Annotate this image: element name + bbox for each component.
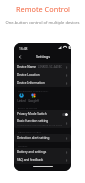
staticText: Settings bbox=[36, 54, 50, 59]
staticText: Basic function setting bbox=[17, 119, 49, 123]
staticText: Detection alert setting bbox=[17, 136, 50, 140]
button[interactable]: Linked bbox=[15, 93, 27, 103]
staticText: Privacy Mode Switch bbox=[17, 112, 47, 116]
staticText: Device Information bbox=[17, 81, 45, 85]
staticText: BASIC SETTINGS bbox=[18, 106, 38, 109]
staticText: Remote Control bbox=[16, 4, 70, 14]
staticText: 16:48 bbox=[19, 46, 28, 50]
staticText: Device Name bbox=[17, 65, 37, 69]
button[interactable]: Privacy Mode Switch bbox=[14, 110, 71, 118]
staticText: One-button control of multiple devices bbox=[5, 20, 80, 26]
staticText: OTHERS bbox=[18, 144, 28, 147]
staticText: Linked bbox=[17, 99, 26, 103]
button[interactable]: GoogleH bbox=[27, 93, 39, 103]
staticText: GoogleH bbox=[28, 99, 39, 103]
button[interactable]: Detection alert setting bbox=[14, 134, 71, 142]
staticText: Automatically sets the device to the mod… bbox=[17, 124, 62, 127]
button[interactable]: FAQ and feedback bbox=[14, 156, 71, 164]
staticText: Device Location bbox=[17, 73, 40, 77]
button[interactable]: Device Name bbox=[14, 63, 71, 71]
button[interactable]: Device Information bbox=[14, 79, 71, 87]
staticText: DETECTION ALARM bbox=[18, 130, 41, 133]
staticText: FAQ and feedback bbox=[17, 158, 44, 162]
button[interactable]: Battery and settings bbox=[14, 148, 71, 156]
staticText: Battery and settings bbox=[17, 150, 47, 154]
button[interactable]: Back bbox=[16, 53, 24, 61]
button[interactable]: Device Location bbox=[14, 71, 71, 79]
staticText: SUPPORTED THIRD PARTY bbox=[18, 89, 49, 92]
button[interactable]: Basic function setting bbox=[14, 118, 71, 128]
staticText: LINKED-SC-4A0EC bbox=[38, 65, 63, 69]
